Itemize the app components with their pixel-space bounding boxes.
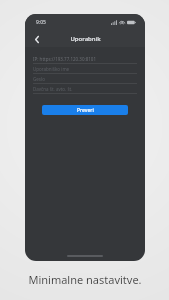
- staticText: Uporabnik: [70, 35, 101, 43]
- staticText: IP: https://193.77.120.30:8101: [33, 56, 96, 62]
- button[interactable]: Davčna št. avto. št.: [25, 84, 145, 94]
- button[interactable]: Nazaj: [31, 33, 43, 45]
- button[interactable]: Geslo: [25, 74, 145, 84]
- button[interactable]: Uporabniško ime: [25, 64, 145, 74]
- button[interactable]: IP: https://193.77.120.30:8101: [25, 54, 145, 64]
- staticText: Geslo: [33, 76, 45, 82]
- staticText: 9:05: [36, 19, 46, 26]
- staticText: Uporabniško ime: [33, 66, 70, 72]
- button[interactable]: Preveri: [42, 105, 128, 115]
- staticText: Preveri: [77, 107, 94, 114]
- staticText: Davčna št. avto. št.: [33, 86, 73, 92]
- staticText: Minimalne nastavitve.: [28, 272, 142, 287]
